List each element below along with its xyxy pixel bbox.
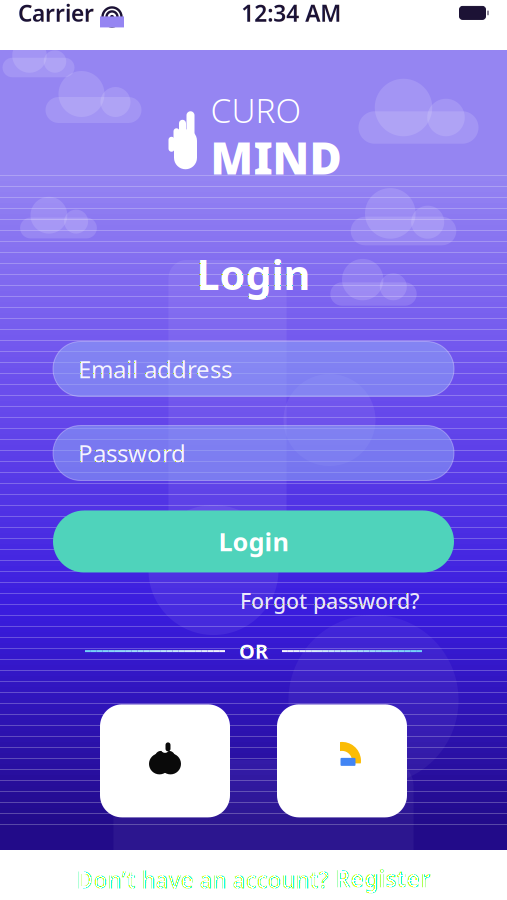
staticText: 12:34 AM: [241, 0, 341, 28]
button[interactable]: Forgot password?: [240, 586, 420, 615]
staticText: OR: [239, 638, 268, 664]
staticText: MIND: [210, 128, 341, 187]
staticText: Forgot password?: [240, 586, 420, 615]
button[interactable]: Password: [53, 425, 454, 480]
button[interactable]: Sign in with Apple: [100, 704, 230, 817]
button[interactable]: Login: [53, 510, 454, 572]
button[interactable]: Email address: [53, 341, 454, 396]
staticText: Carrier: [18, 0, 94, 28]
staticText: CURO: [210, 88, 301, 132]
staticText: Login: [196, 247, 310, 301]
staticText: Password: [78, 437, 186, 469]
staticText: Email address: [78, 353, 232, 385]
staticText: Login: [218, 525, 288, 558]
staticText: Don’t have an account?: [76, 865, 328, 895]
button[interactable]: Don’t have an account?: [76, 863, 430, 896]
staticText: Register: [335, 863, 430, 893]
button[interactable]: Sign in with Google: [277, 704, 407, 817]
